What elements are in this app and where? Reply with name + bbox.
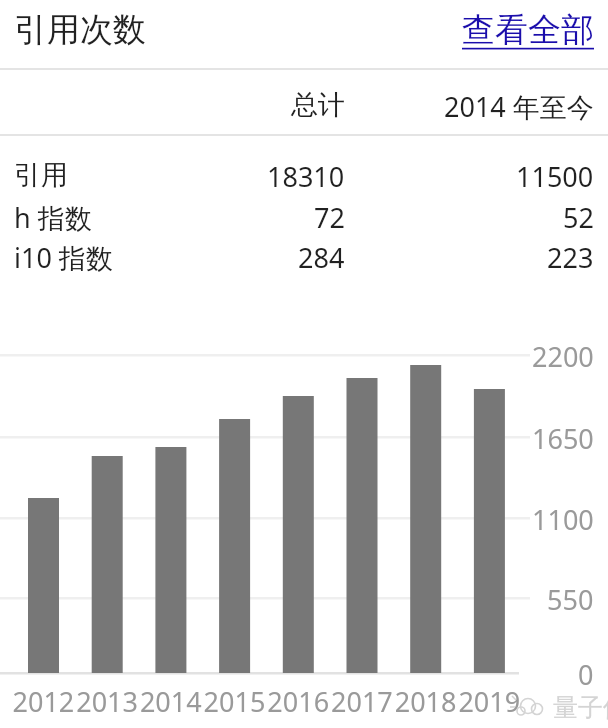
button[interactable]: 查看全部 — [455, 8, 596, 52]
